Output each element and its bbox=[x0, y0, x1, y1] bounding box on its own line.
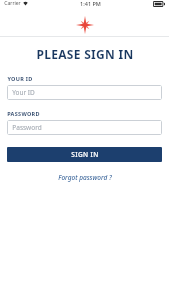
staticText: PLEASE SIGN IN bbox=[36, 46, 134, 62]
button[interactable]: Forgot password ? bbox=[7, 173, 162, 182]
staticText: YOUR ID bbox=[7, 75, 33, 82]
staticText: Password bbox=[12, 123, 42, 132]
staticText: 1:41 PM bbox=[80, 0, 101, 7]
staticText: Forgot password ? bbox=[58, 173, 112, 182]
staticText: Carrier bbox=[4, 0, 21, 7]
staticText: PASSWORD bbox=[7, 110, 40, 117]
button[interactable]: SIGN IN bbox=[7, 147, 162, 162]
staticText: SIGN IN bbox=[71, 150, 99, 159]
button[interactable]: Password bbox=[7, 120, 162, 135]
other: App logo bbox=[76, 16, 94, 34]
button[interactable]: Your ID bbox=[7, 85, 162, 100]
staticText: Your ID bbox=[12, 88, 35, 97]
